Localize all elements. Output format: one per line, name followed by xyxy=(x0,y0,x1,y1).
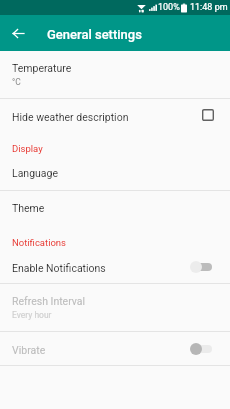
button[interactable]: Enable Notifications toggle xyxy=(190,261,212,273)
staticText: 100% xyxy=(158,2,180,13)
button[interactable]: Vibrate toggle xyxy=(190,343,212,355)
staticText: 11:48 pm xyxy=(190,2,228,13)
button[interactable]: Navigate up xyxy=(0,15,36,51)
button[interactable]: Hide weather description xyxy=(0,99,230,132)
staticText: °C xyxy=(12,77,21,87)
staticText: Enable Notifications xyxy=(12,262,106,274)
staticText: Theme xyxy=(12,202,45,214)
button[interactable]: Language xyxy=(0,156,230,190)
button[interactable]: Enable Notifications xyxy=(0,250,230,283)
button[interactable]: Hide weather description checkbox xyxy=(200,110,212,122)
button[interactable]: Temperature xyxy=(0,51,230,98)
staticText: Language xyxy=(12,167,59,179)
staticText: Hide weather description xyxy=(12,111,129,123)
button[interactable]: Vibrate xyxy=(0,332,230,365)
staticText: Notifications xyxy=(12,237,67,248)
button[interactable]: Refresh Interval xyxy=(0,284,230,331)
staticText: Temperature xyxy=(12,62,72,74)
staticText: General settings xyxy=(47,27,142,42)
staticText: Refresh Interval xyxy=(12,295,86,307)
button[interactable]: Theme xyxy=(0,191,230,225)
staticText: Display xyxy=(12,143,43,154)
staticText: Every hour xyxy=(12,310,52,320)
staticText: Vibrate xyxy=(12,344,46,356)
